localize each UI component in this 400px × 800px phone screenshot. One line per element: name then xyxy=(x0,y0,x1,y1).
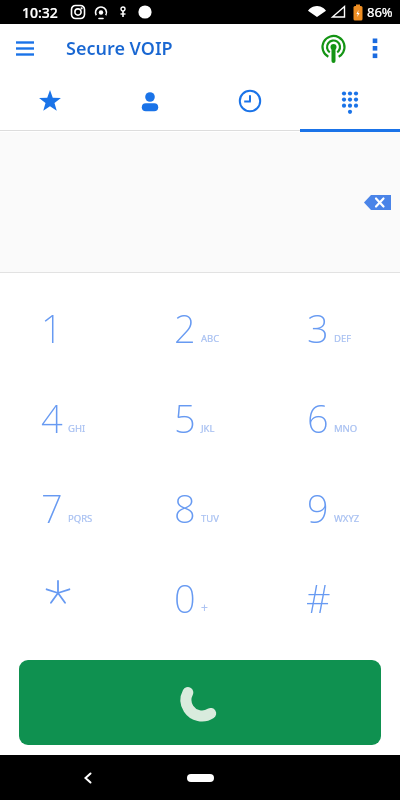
staticText: MNO xyxy=(334,422,358,435)
staticText: GHI xyxy=(68,422,86,435)
staticText: 2 xyxy=(174,302,196,354)
button[interactable]: 2 xyxy=(134,283,267,373)
staticText: DEF xyxy=(334,332,352,345)
staticText: Secure VOIP xyxy=(66,36,173,61)
staticText: 9 xyxy=(307,482,329,534)
button[interactable]: 1 xyxy=(0,283,134,373)
staticText: PQRS xyxy=(68,512,93,525)
button[interactable] xyxy=(187,774,214,782)
staticText: 1 xyxy=(41,302,63,354)
button[interactable] xyxy=(300,72,400,129)
button[interactable]: 6 xyxy=(267,373,400,463)
button[interactable]: 8 xyxy=(134,463,267,553)
staticText: 0 xyxy=(174,572,196,624)
staticText: 10:32 xyxy=(22,3,58,22)
button[interactable]: 7 xyxy=(0,463,134,553)
button[interactable] xyxy=(320,35,347,62)
staticText: WXYZ xyxy=(334,512,360,525)
staticText: JKL xyxy=(201,422,215,435)
button[interactable] xyxy=(16,39,35,58)
button[interactable]: 4 xyxy=(0,373,134,463)
button[interactable]: 5 xyxy=(134,373,267,463)
staticText: TUV xyxy=(201,512,219,525)
button[interactable] xyxy=(370,36,380,60)
staticText: + xyxy=(201,599,208,615)
staticText: 86% xyxy=(367,3,393,21)
button[interactable] xyxy=(0,553,134,643)
staticText: 6 xyxy=(307,392,329,444)
staticText: 5 xyxy=(174,392,196,444)
button[interactable]: 3 xyxy=(267,283,400,373)
button[interactable] xyxy=(200,72,300,129)
button[interactable] xyxy=(364,195,391,210)
staticText: 3 xyxy=(307,302,329,354)
button[interactable] xyxy=(100,72,200,129)
staticText: # xyxy=(306,572,331,624)
button[interactable]: # xyxy=(267,553,400,643)
staticText: 8 xyxy=(174,482,196,534)
staticText: 4 xyxy=(41,392,63,444)
staticText: 7 xyxy=(41,482,63,534)
button[interactable]: 9 xyxy=(267,463,400,553)
button[interactable]: 0 xyxy=(134,553,267,643)
button[interactable] xyxy=(82,772,94,784)
button[interactable] xyxy=(0,72,100,129)
button[interactable] xyxy=(19,660,381,745)
staticText: ABC xyxy=(201,332,220,345)
